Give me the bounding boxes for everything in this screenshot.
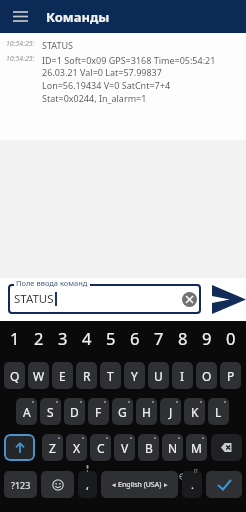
staticText: STATUS	[14, 291, 54, 307]
button[interactable]	[5, 0, 36, 33]
button[interactable]: I	[172, 362, 193, 389]
staticText: I	[180, 368, 185, 384]
button[interactable]: T	[100, 362, 121, 389]
staticText: ,	[86, 477, 89, 492]
button[interactable]: 1	[4, 325, 25, 351]
staticText: English (USA)	[118, 480, 162, 490]
staticText: ◂	[112, 481, 116, 489]
staticText: 1	[10, 327, 20, 349]
staticText: 6	[130, 327, 140, 349]
staticText: J	[169, 404, 173, 420]
button[interactable]: 4	[76, 325, 97, 351]
button[interactable]: 5	[100, 325, 121, 351]
button[interactable]: A	[16, 398, 37, 425]
staticText: S	[47, 404, 54, 420]
button[interactable]: Q	[4, 362, 25, 389]
button[interactable]: 7	[148, 325, 169, 351]
button[interactable]: F	[88, 398, 109, 425]
button[interactable]	[211, 283, 246, 315]
staticText: Y	[131, 368, 138, 384]
staticText: ?123	[11, 479, 31, 491]
staticText: X	[73, 440, 81, 456]
button[interactable]: L	[208, 398, 229, 425]
staticText: Z	[49, 440, 56, 456]
button[interactable]	[211, 434, 242, 461]
button[interactable]: STATUS	[8, 284, 201, 314]
staticText: W	[33, 368, 45, 384]
staticText: 9	[202, 327, 212, 349]
staticText: D	[70, 404, 79, 420]
button[interactable]: M	[186, 434, 207, 461]
button[interactable]: ◂	[101, 471, 178, 498]
button[interactable]: S	[40, 398, 61, 425]
staticText: O	[202, 368, 212, 384]
button[interactable]: J	[160, 398, 181, 425]
staticText: 8	[178, 327, 188, 349]
staticText: A	[23, 404, 31, 420]
button[interactable]	[206, 471, 242, 498]
staticText: STATUS	[42, 39, 73, 51]
button[interactable]: U	[148, 362, 169, 389]
staticText: Q	[10, 368, 20, 384]
button[interactable]: K	[184, 398, 205, 425]
button[interactable]: B	[138, 434, 159, 461]
staticText: ID=1 Soft=0x09 GPS=3168 Time=05:54:21 26…	[42, 54, 216, 105]
staticText: Поле ввода команд	[16, 278, 88, 288]
button[interactable]	[4, 434, 35, 461]
staticText: ▸	[164, 481, 168, 489]
button[interactable]: 8	[172, 325, 193, 351]
staticText: K	[191, 404, 199, 420]
staticText: M	[191, 440, 202, 456]
button[interactable]	[182, 292, 197, 307]
staticText: 5	[106, 327, 116, 349]
staticText: G	[118, 404, 127, 420]
button[interactable]: W	[28, 362, 49, 389]
button[interactable]	[41, 471, 74, 498]
button[interactable]: R	[76, 362, 97, 389]
staticText: R	[83, 368, 91, 384]
button[interactable]: Y	[124, 362, 145, 389]
staticText: F	[95, 404, 102, 420]
button[interactable]: 3	[52, 325, 73, 351]
button[interactable]: V	[114, 434, 135, 461]
staticText: .	[191, 477, 194, 492]
staticText: Команды	[46, 8, 110, 26]
button[interactable]: .	[182, 471, 202, 498]
staticText: 4	[82, 327, 92, 349]
button[interactable]: O	[196, 362, 217, 389]
button[interactable]: E	[52, 362, 73, 389]
button[interactable]: H	[136, 398, 157, 425]
button[interactable]: G	[112, 398, 133, 425]
staticText: T	[107, 368, 114, 384]
staticText: V	[121, 440, 129, 456]
staticText: N	[168, 440, 178, 456]
button[interactable]: ,	[78, 471, 97, 498]
staticText: 10:54:25:	[6, 39, 35, 49]
staticText: E	[59, 368, 66, 384]
button[interactable]: C	[90, 434, 111, 461]
staticText: 7	[154, 327, 164, 349]
staticText: !?	[194, 468, 198, 475]
button[interactable]: D	[64, 398, 85, 425]
staticText: 0	[226, 327, 236, 349]
staticText: H	[142, 404, 151, 420]
staticText: C	[97, 440, 105, 456]
button[interactable]: 0	[220, 325, 241, 351]
button[interactable]: 9	[196, 325, 217, 351]
staticText: B	[145, 440, 153, 456]
staticText: 2	[34, 327, 44, 349]
staticText: U	[154, 368, 163, 384]
staticText: 3	[58, 327, 68, 349]
button[interactable]: X	[66, 434, 87, 461]
button[interactable]: N	[162, 434, 183, 461]
staticText: P	[227, 368, 235, 384]
button[interactable]: 6	[124, 325, 145, 351]
staticText: L	[215, 404, 222, 420]
button[interactable]: ?123	[4, 471, 37, 498]
button[interactable]: Z	[42, 434, 63, 461]
button[interactable]: P	[220, 362, 241, 389]
staticText: 10:54:25:	[6, 54, 35, 64]
button[interactable]: 2	[28, 325, 49, 351]
